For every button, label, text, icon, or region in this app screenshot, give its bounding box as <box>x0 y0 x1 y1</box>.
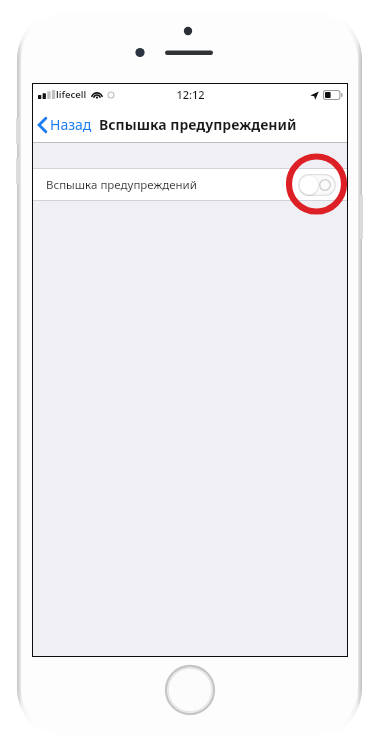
button[interactable]: Назад <box>33 110 98 139</box>
staticText: 12:12 <box>176 87 205 102</box>
staticText: Вспышка предупреждений <box>99 115 297 134</box>
button[interactable]: Вспышка предупреждений <box>33 169 347 200</box>
staticText: lifecell <box>56 88 87 101</box>
staticText: Назад <box>50 115 92 134</box>
button[interactable]: Вспышка предупреждений, выключено <box>298 174 336 196</box>
staticText: Вспышка предупреждений <box>46 177 197 193</box>
